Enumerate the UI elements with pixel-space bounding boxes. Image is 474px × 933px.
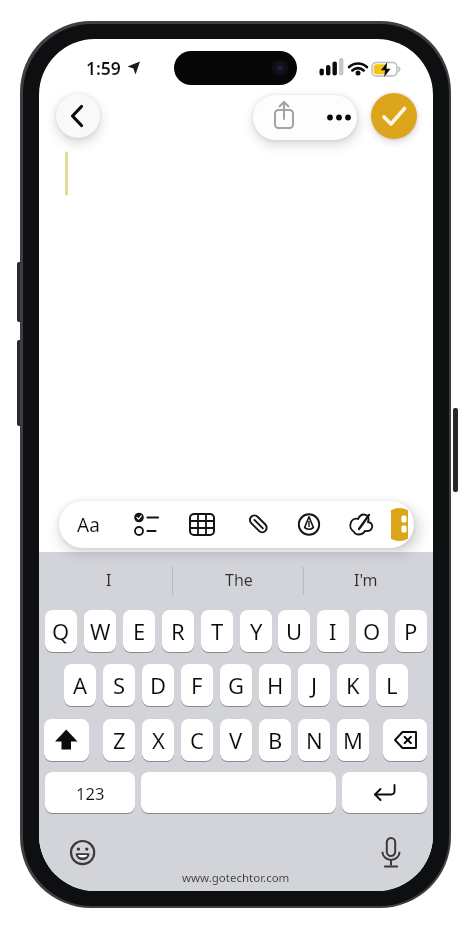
staticText: L	[386, 670, 398, 700]
staticText: Q	[52, 616, 70, 646]
staticText: R	[171, 616, 185, 646]
button[interactable]: D	[142, 664, 174, 706]
button[interactable]: Y	[240, 610, 272, 652]
button[interactable]	[109, 501, 159, 548]
staticText: G	[228, 670, 245, 700]
button[interactable]	[359, 501, 409, 548]
button[interactable]	[209, 501, 259, 548]
staticText: E	[133, 616, 146, 646]
button[interactable]	[59, 501, 109, 548]
button[interactable]	[159, 501, 209, 548]
button[interactable]: V	[220, 719, 252, 761]
staticText: U	[286, 616, 303, 646]
staticText: N	[306, 725, 323, 755]
button[interactable]: K	[337, 664, 369, 706]
button[interactable]: H	[259, 664, 291, 706]
staticText: The	[225, 569, 253, 591]
button[interactable]	[141, 772, 336, 813]
button[interactable]: S	[103, 664, 135, 706]
button[interactable]	[259, 501, 309, 548]
button[interactable]: J	[298, 664, 330, 706]
staticText: O	[363, 616, 381, 646]
staticText: C	[190, 725, 204, 755]
button[interactable]: E	[123, 610, 155, 652]
button[interactable]: I	[317, 610, 349, 652]
button[interactable]: Q	[45, 610, 77, 652]
button[interactable]: R	[162, 610, 194, 652]
staticText: 123	[76, 782, 105, 804]
staticText: Aa	[77, 512, 100, 538]
button[interactable]	[371, 93, 417, 139]
button[interactable]: I	[45, 556, 173, 604]
button[interactable]: X	[142, 719, 174, 761]
staticText: V	[229, 725, 243, 755]
staticText: J	[311, 670, 318, 700]
button[interactable]: P	[395, 610, 427, 652]
button[interactable]: Z	[103, 719, 135, 761]
button[interactable]: W	[84, 610, 116, 652]
button[interactable]	[305, 95, 357, 140]
button[interactable]	[371, 833, 411, 873]
button[interactable]: B	[259, 719, 291, 761]
button[interactable]: N	[298, 719, 330, 761]
staticText: K	[346, 670, 360, 700]
staticText: T	[211, 616, 224, 646]
button[interactable]	[383, 719, 427, 761]
button[interactable]	[56, 94, 100, 138]
staticText: I	[329, 616, 337, 646]
staticText: 1:59	[86, 56, 121, 80]
button[interactable]: L	[376, 664, 408, 706]
button[interactable]: I'm	[304, 556, 428, 604]
staticText: X	[152, 725, 165, 755]
button[interactable]: The	[173, 556, 304, 604]
staticText: A	[73, 670, 88, 700]
staticText: Z	[113, 725, 126, 755]
staticText: I'm	[354, 569, 378, 591]
staticText: S	[113, 670, 126, 700]
staticText: www.gotechtor.com	[182, 870, 290, 886]
staticText: P	[404, 616, 418, 646]
button[interactable]: 123	[45, 772, 135, 813]
staticText: W	[90, 616, 111, 646]
staticText: Y	[250, 616, 263, 646]
button[interactable]	[44, 719, 89, 761]
staticText: B	[268, 725, 283, 755]
staticText: I	[106, 569, 112, 591]
button[interactable]: O	[356, 610, 388, 652]
button[interactable]: U	[278, 610, 310, 652]
button[interactable]: M	[337, 719, 369, 761]
staticText: M	[343, 725, 363, 755]
button[interactable]	[309, 501, 359, 548]
staticText: H	[267, 670, 284, 700]
button[interactable]: G	[220, 664, 252, 706]
button[interactable]	[63, 833, 103, 873]
staticText: D	[150, 670, 167, 700]
staticText: F	[191, 670, 203, 700]
button[interactable]: F	[181, 664, 213, 706]
button[interactable]: C	[181, 719, 213, 761]
button[interactable]: T	[201, 610, 233, 652]
button[interactable]: A	[64, 664, 96, 706]
button[interactable]	[253, 95, 305, 140]
button[interactable]	[342, 772, 427, 813]
